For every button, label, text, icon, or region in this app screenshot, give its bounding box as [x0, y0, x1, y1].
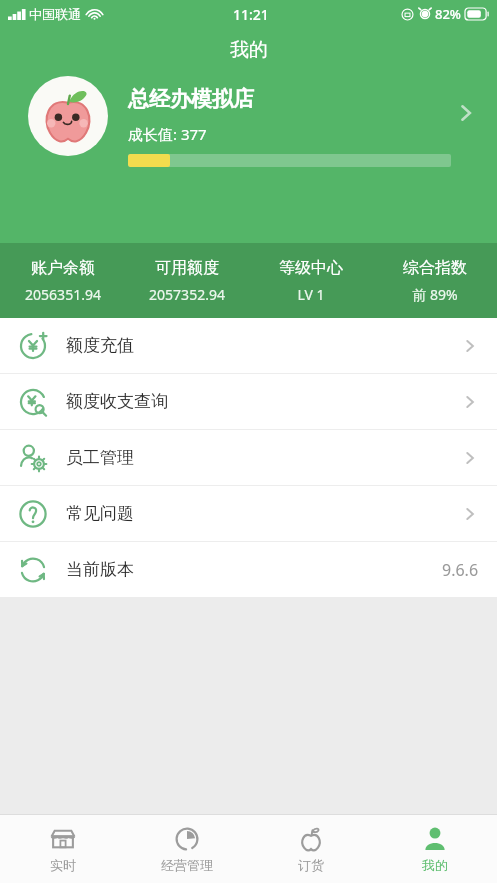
staticText: 我的: [422, 857, 448, 873]
button[interactable]: 等级中心: [249, 243, 373, 318]
staticText: 等级中心: [279, 258, 343, 278]
staticText: 前 89%: [412, 285, 458, 304]
button[interactable]: 员工管理: [0, 430, 497, 486]
button[interactable]: 总经办模拟店: [0, 72, 497, 243]
staticText: 经营管理: [161, 857, 213, 873]
button[interactable]: 常见问题: [0, 486, 497, 542]
other: Open profile: [451, 98, 481, 128]
button[interactable]: 可用额度: [125, 243, 249, 318]
staticText: 2057352.94: [149, 285, 225, 304]
staticText: 额度充值: [66, 335, 134, 356]
button[interactable]: 当前版本: [0, 542, 497, 597]
staticText: 82%: [435, 5, 461, 23]
staticText: 我的: [230, 38, 268, 62]
staticText: 额度收支查询: [66, 391, 168, 412]
staticText: 可用额度: [155, 258, 219, 278]
staticText: 当前版本: [66, 559, 134, 580]
button[interactable]: 实时: [0, 815, 125, 883]
staticText: 9.6.6: [442, 559, 479, 581]
button[interactable]: 订货: [249, 815, 373, 883]
button[interactable]: 额度充值: [0, 318, 497, 374]
button[interactable]: 我的: [373, 815, 497, 883]
staticText: LV 1: [297, 285, 325, 304]
button[interactable]: 额度收支查询: [0, 374, 497, 430]
button[interactable]: 经营管理: [125, 815, 249, 883]
staticText: 常见问题: [66, 503, 134, 524]
button[interactable]: 综合指数: [373, 243, 497, 318]
staticText: 综合指数: [403, 258, 467, 278]
staticText: 实时: [50, 857, 76, 873]
staticText: 总经办模拟店: [128, 86, 254, 112]
staticText: 中国联通: [29, 6, 81, 22]
staticText: 11:21: [233, 5, 269, 24]
staticText: 成长值: 377: [128, 124, 207, 144]
staticText: 订货: [298, 857, 324, 873]
button[interactable]: 账户余额: [0, 243, 125, 318]
staticText: 2056351.94: [25, 285, 101, 304]
staticText: 账户余额: [31, 258, 95, 278]
staticText: 员工管理: [66, 447, 134, 468]
